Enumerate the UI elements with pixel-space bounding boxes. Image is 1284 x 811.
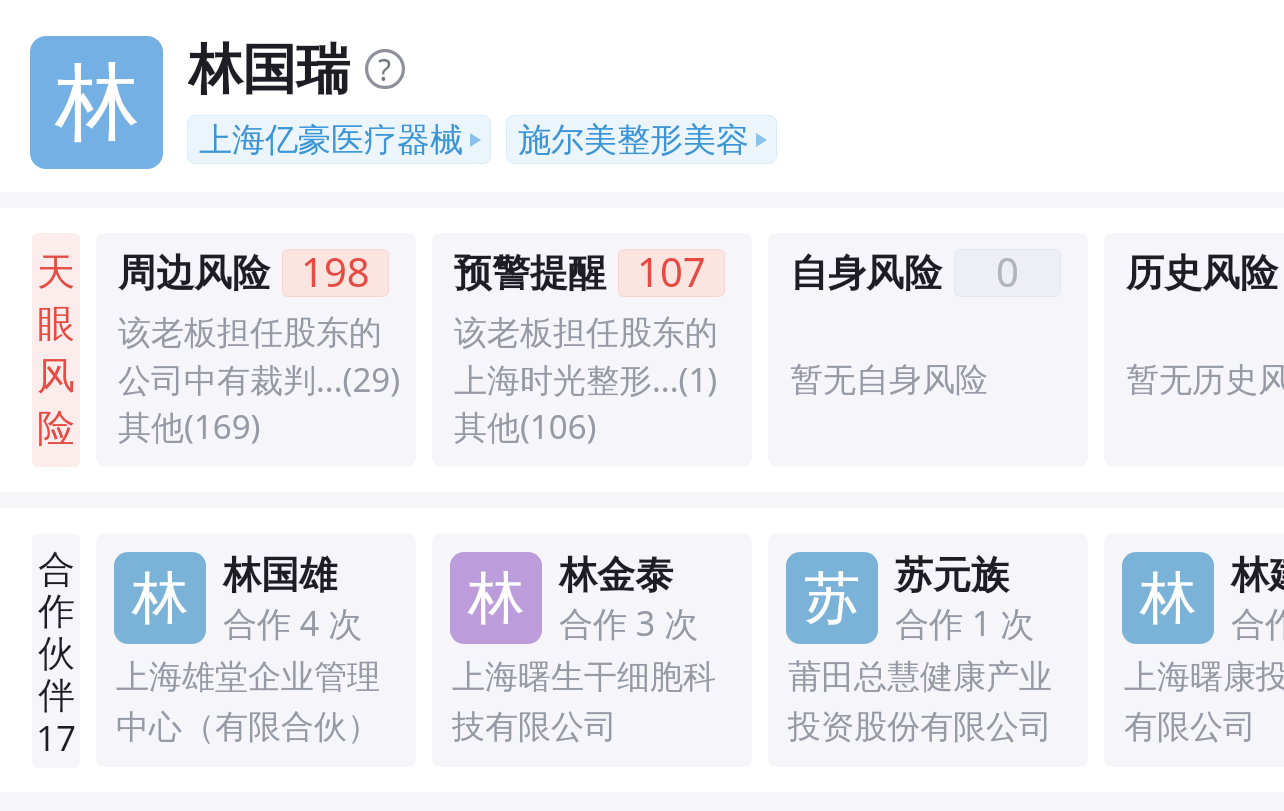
staticText: 林: [468, 563, 524, 634]
staticText: 伴: [38, 672, 75, 714]
staticText: 合作 1 次: [1231, 600, 1284, 644]
staticText: 该老板担任股东的: [454, 312, 718, 354]
staticText: 合作 1 次: [895, 600, 1035, 644]
button[interactable]: 苏: [768, 534, 1088, 767]
staticText: 上海时光整形...(1): [454, 357, 718, 402]
staticText: 林国雄: [223, 551, 337, 599]
staticText: 上海曙生干细胞科: [452, 656, 716, 698]
button[interactable]: Avatar 林国瑞: [30, 36, 163, 169]
staticText: 预警提醒: [454, 249, 606, 297]
button[interactable]: 林: [96, 534, 416, 767]
staticText: 技有限公司: [452, 706, 617, 748]
staticText: 上海亿豪医疗器械: [199, 119, 463, 161]
staticText: 施尔美整形美容: [518, 119, 749, 161]
staticText: 眼: [37, 300, 75, 348]
button[interactable]: Help: [364, 48, 406, 90]
button[interactable]: 施尔美整形美容: [506, 115, 777, 164]
staticText: 合作 4 次: [223, 600, 363, 644]
staticText: 周边风险: [118, 249, 270, 297]
staticText: 自身风险: [790, 249, 942, 297]
staticText: 中心（有限合伙）: [116, 706, 380, 748]
staticText: 0: [996, 249, 1019, 292]
staticText: 公司中有裁判...(29): [118, 357, 401, 402]
button[interactable]: 周边风险: [96, 233, 416, 466]
button[interactable]: 林: [432, 534, 752, 767]
staticText: 历史风险: [1126, 249, 1278, 297]
staticText: 有限公司: [1124, 706, 1256, 748]
staticText: ?: [378, 49, 392, 90]
button[interactable]: 天: [32, 233, 80, 467]
staticText: 险: [37, 404, 75, 452]
button[interactable]: 林: [1104, 534, 1284, 767]
staticText: 合: [38, 546, 75, 588]
staticText: 林国瑞: [188, 36, 350, 98]
staticText: 林: [132, 563, 188, 634]
staticText: 暂无历史风险: [1126, 359, 1284, 401]
staticText: 苏元族: [895, 551, 1009, 599]
staticText: 林: [55, 50, 139, 156]
staticText: 苏: [804, 563, 860, 634]
staticText: 17: [36, 714, 77, 756]
staticText: 投资股份有限公司: [788, 706, 1052, 748]
button[interactable]: 上海亿豪医疗器械: [187, 115, 491, 164]
staticText: 风: [37, 352, 75, 400]
staticText: 其他(169): [118, 404, 261, 449]
staticText: 林金泰: [559, 551, 673, 599]
staticText: 天: [37, 248, 75, 296]
staticText: 上海曙康投资管理: [1124, 656, 1284, 698]
staticText: 林: [1140, 563, 1196, 634]
button[interactable]: 历史风险: [1104, 233, 1284, 466]
staticText: 198: [301, 249, 370, 292]
button[interactable]: 自身风险: [768, 233, 1088, 466]
staticText: 上海雄堂企业管理: [116, 656, 380, 698]
staticText: 莆田总慧健康产业: [788, 656, 1052, 698]
staticText: 合作 3 次: [559, 600, 699, 644]
button[interactable]: 合: [32, 534, 80, 768]
staticText: 作: [38, 588, 75, 630]
staticText: 107: [637, 249, 706, 292]
staticText: 暂无自身风险: [790, 359, 988, 401]
button[interactable]: 预警提醒: [432, 233, 752, 466]
staticText: 其他(106): [454, 404, 597, 449]
staticText: 该老板担任股东的: [118, 312, 382, 354]
staticText: 林建新: [1231, 551, 1284, 599]
staticText: 伙: [38, 630, 75, 672]
